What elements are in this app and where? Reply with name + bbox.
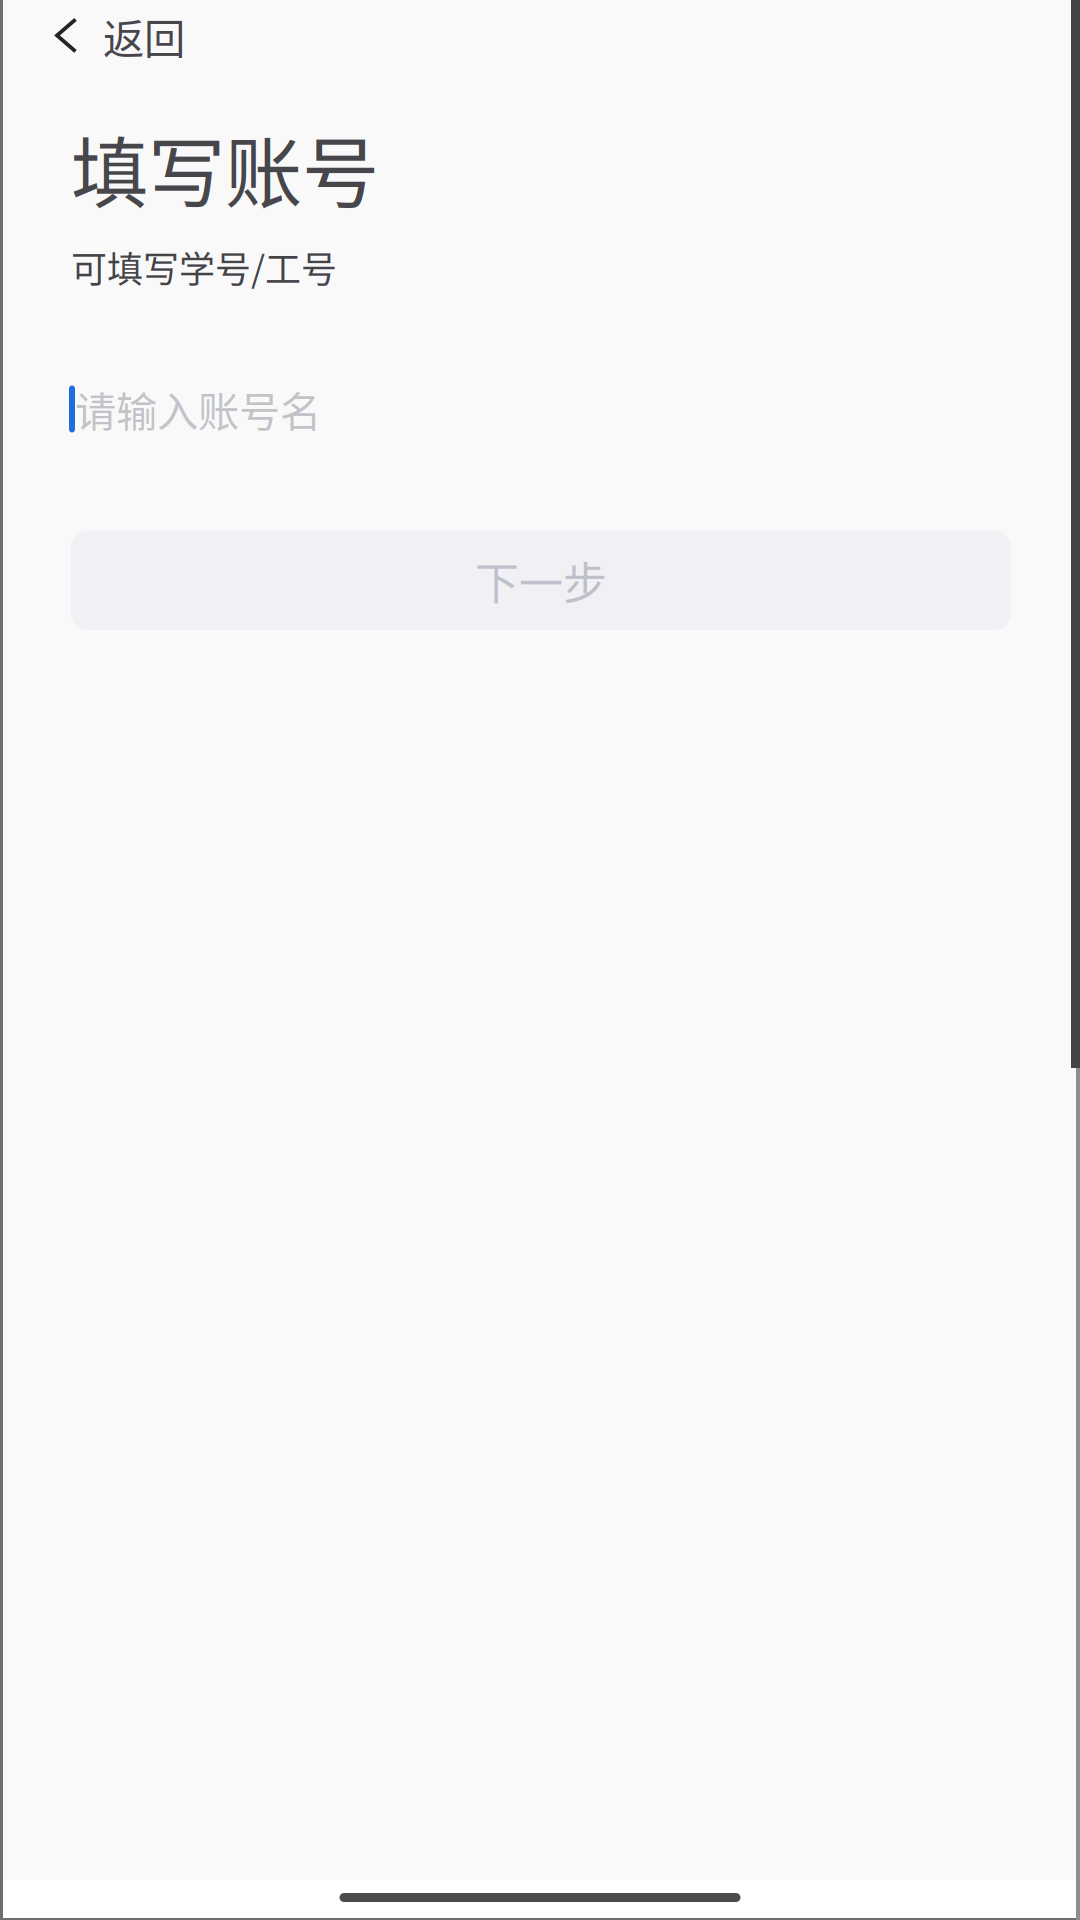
staticText: 返回	[103, 6, 185, 66]
staticText: 请输入账号名	[75, 379, 321, 439]
staticText: 填写账号	[71, 112, 379, 224]
staticText: 可填写学号/工号	[71, 241, 337, 293]
staticText: 下一步	[475, 549, 607, 612]
button[interactable]: 返回	[0, 0, 213, 76]
button[interactable]: 下一步	[71, 531, 1011, 630]
button[interactable]: 请输入账号名	[69, 377, 1011, 441]
